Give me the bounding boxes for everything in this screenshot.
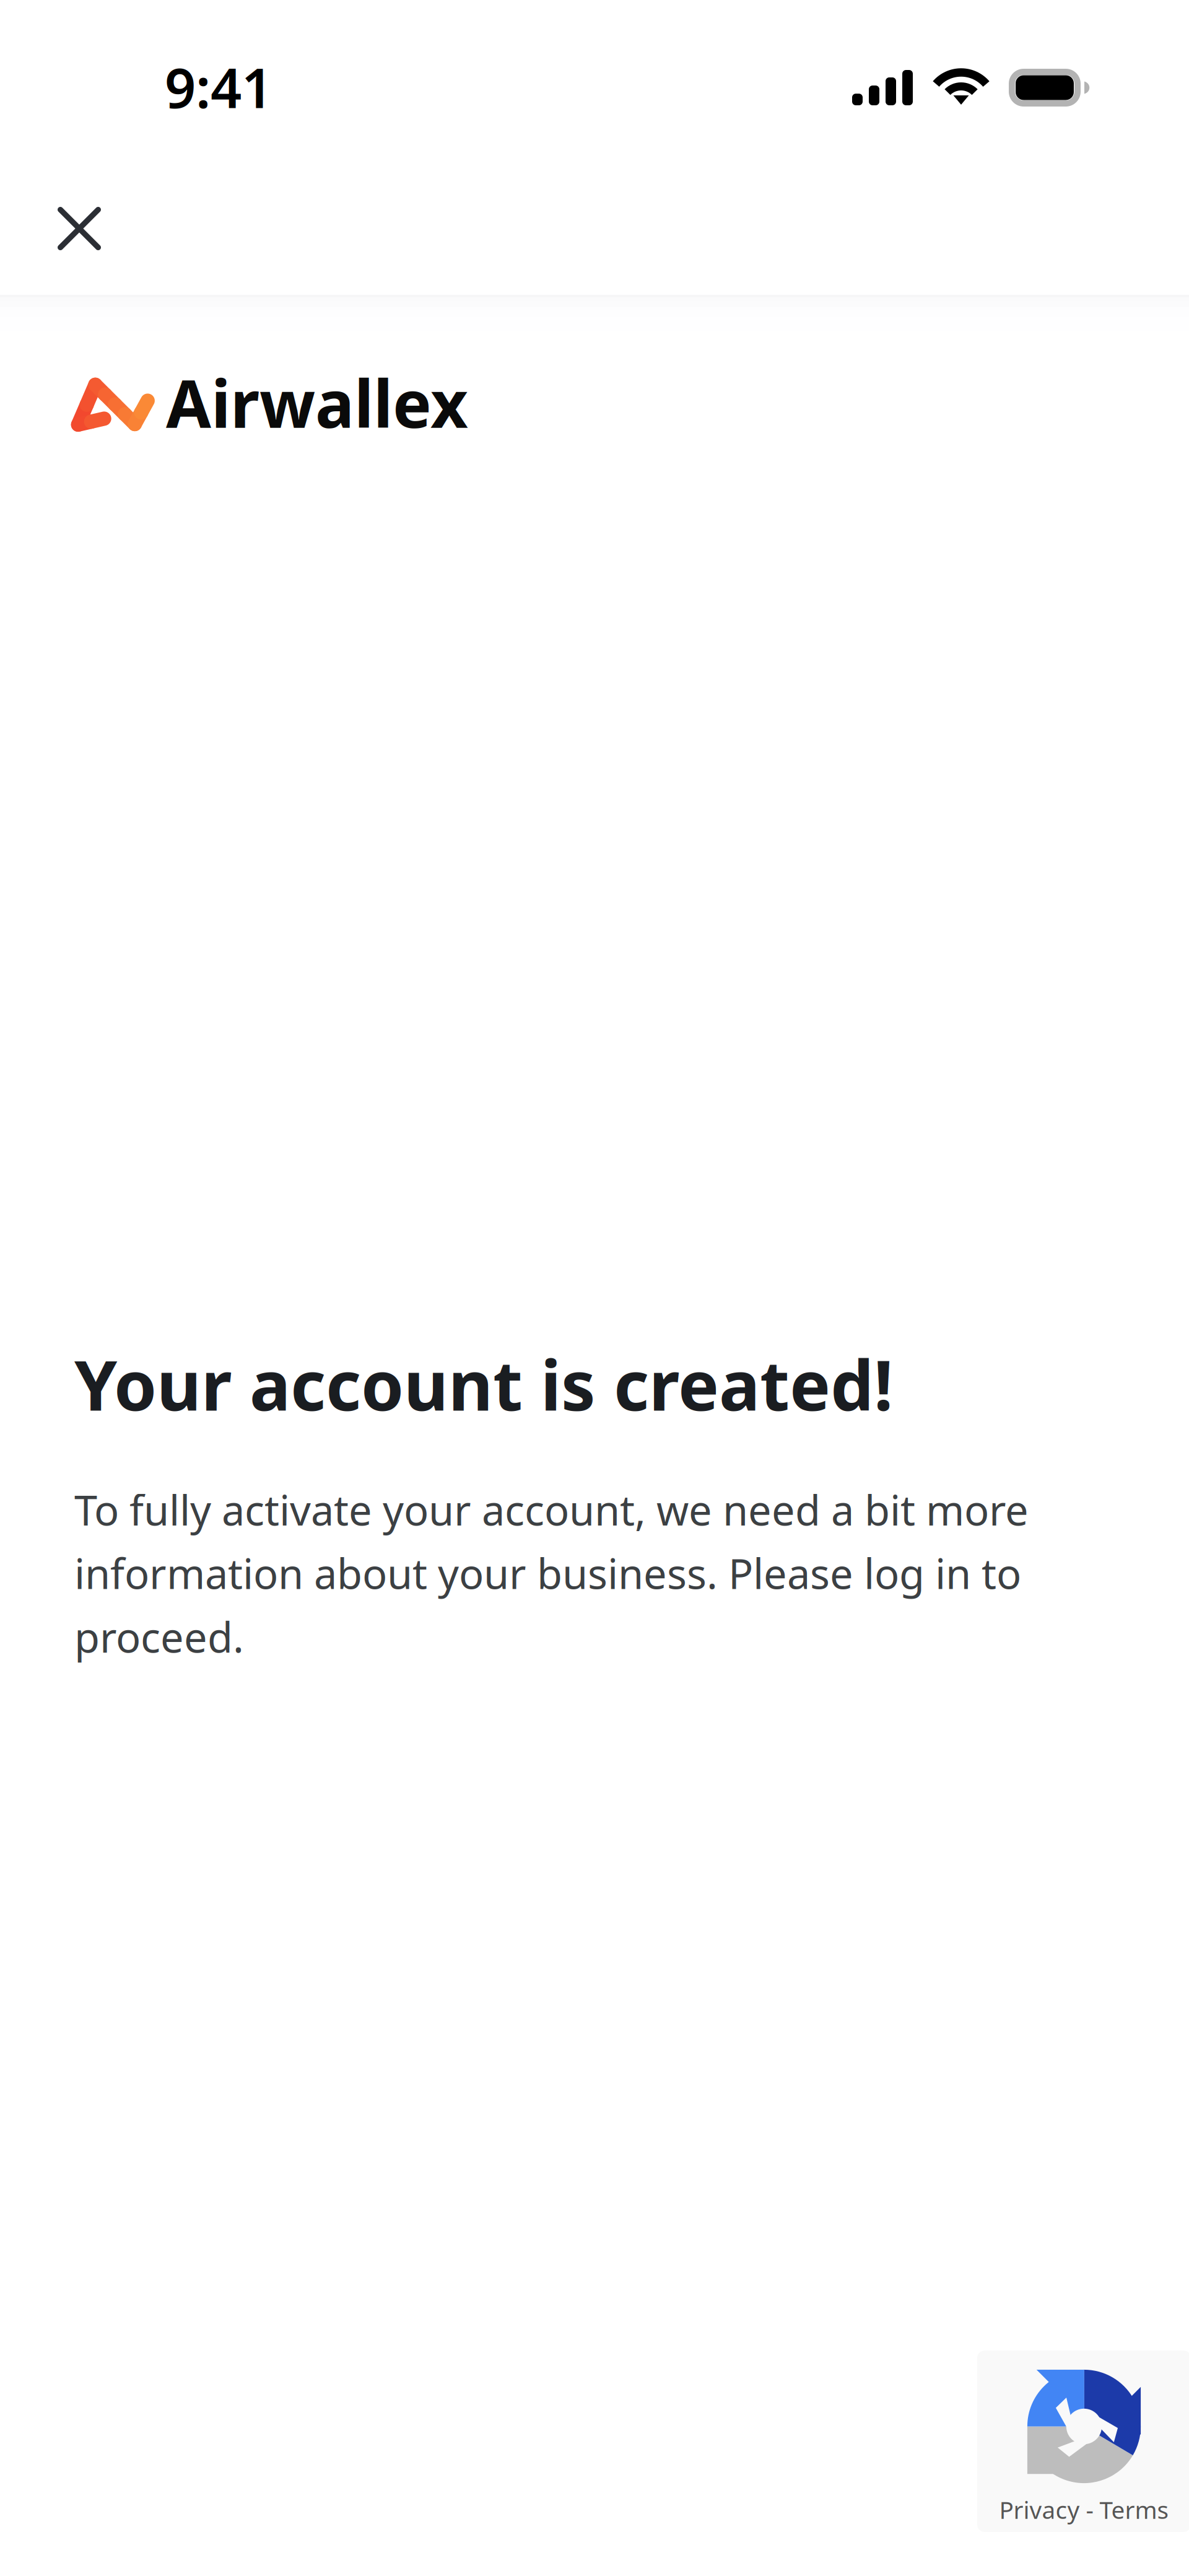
staticText: 9:41 — [165, 51, 272, 123]
button[interactable]: reCAPTCHA Privacy and Terms — [977, 2351, 1189, 2532]
staticText: Privacy - Terms — [999, 2494, 1169, 2525]
button[interactable]: Close — [30, 179, 129, 278]
staticText: Airwallex — [166, 359, 468, 446]
staticText: Your account is created! — [74, 1338, 893, 1430]
staticText: To fully activate your account, we need … — [74, 1482, 1029, 1664]
